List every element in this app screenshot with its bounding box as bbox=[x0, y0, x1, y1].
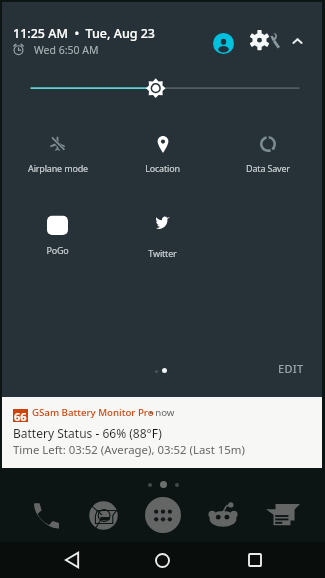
staticText: • now bbox=[149, 406, 175, 419]
staticText: Airplane mode bbox=[28, 162, 88, 174]
button[interactable]: Collapse bbox=[286, 30, 309, 53]
button[interactable]: EDIT bbox=[268, 356, 314, 381]
button[interactable]: Settings bbox=[248, 29, 281, 52]
button[interactable]: Reddit bbox=[206, 498, 240, 532]
button[interactable]: Data Saver bbox=[215, 136, 320, 184]
staticText: Battery Status - 66% (88°F) bbox=[13, 425, 162, 441]
staticText: EDIT bbox=[278, 361, 304, 376]
button[interactable]: PoGo bbox=[5, 214, 110, 262]
staticText: Data Saver bbox=[246, 162, 290, 174]
staticText: Twitter bbox=[148, 247, 177, 259]
button[interactable]: Location bbox=[110, 136, 215, 184]
button[interactable]: News bbox=[266, 498, 300, 532]
button[interactable]: All apps bbox=[145, 497, 181, 533]
button[interactable]: User bbox=[213, 33, 234, 54]
staticText: 66 bbox=[14, 409, 27, 422]
button[interactable]: Brightness bbox=[26, 77, 303, 101]
button[interactable]: Airplane mode bbox=[5, 136, 110, 184]
staticText: 11:25 AM • Tue, Aug 23 bbox=[13, 25, 156, 42]
button[interactable]: Chrome Beta bbox=[86, 498, 120, 532]
staticText: PoGo bbox=[46, 244, 69, 256]
staticText: Location bbox=[145, 162, 180, 174]
staticText: GSam Battery Monitor Pro bbox=[32, 406, 154, 419]
staticText: Time Left: 03:52 (Average), 03:52 (Last … bbox=[13, 442, 245, 458]
button[interactable]: Back bbox=[54, 542, 90, 578]
staticText: Wed 6:50 AM bbox=[34, 43, 99, 57]
button[interactable]: Home bbox=[144, 542, 180, 578]
button[interactable]: Twitter bbox=[110, 214, 215, 262]
button[interactable]: Phone bbox=[27, 498, 61, 532]
button[interactable]: Recents bbox=[237, 542, 273, 578]
